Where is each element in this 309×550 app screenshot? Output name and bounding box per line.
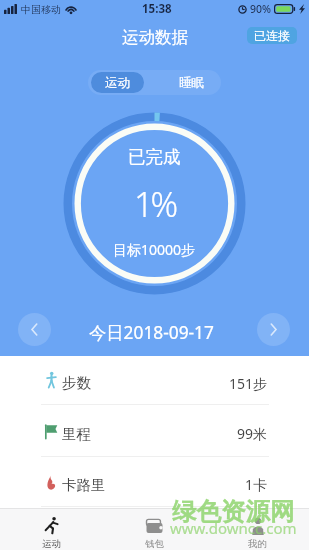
- button[interactable]: 钱包: [103, 509, 206, 550]
- staticText: 今日2018-09-17: [89, 321, 214, 345]
- button[interactable]: 里程: [0, 405, 309, 456]
- button[interactable]: 我的: [206, 509, 309, 550]
- staticText: 已连接: [254, 28, 290, 43]
- staticText: 99米: [237, 424, 268, 443]
- staticText: 目标10000步: [113, 240, 196, 259]
- button[interactable]: Previous day: [18, 313, 51, 346]
- staticText: 90%: [250, 2, 271, 16]
- button[interactable]: 运动: [0, 509, 103, 550]
- button[interactable]: 步数: [0, 356, 309, 404]
- staticText: 我的: [248, 538, 267, 550]
- staticText: 运动: [105, 75, 130, 91]
- staticText: 绿色资源网: [172, 496, 295, 527]
- staticText: 运动: [42, 538, 61, 550]
- staticText: 1卡: [245, 475, 268, 494]
- staticText: 步数: [62, 374, 91, 392]
- staticText: 运动数据: [122, 27, 188, 48]
- button[interactable]: Next day: [257, 313, 290, 346]
- staticText: 睡眠: [179, 75, 204, 91]
- button[interactable]: 卡路里: [0, 457, 309, 506]
- staticText: 钱包: [145, 538, 164, 550]
- staticText: www.downcc.com: [170, 518, 297, 538]
- staticText: 15:38: [142, 1, 172, 17]
- button[interactable]: 运动: [91, 72, 144, 93]
- staticText: 1%: [134, 181, 176, 227]
- button[interactable]: 已连接: [247, 27, 297, 44]
- staticText: 里程: [62, 425, 91, 443]
- staticText: 已完成: [128, 146, 181, 168]
- staticText: 中国移动: [21, 3, 61, 16]
- staticText: 151步: [229, 374, 268, 393]
- staticText: 卡路里: [62, 476, 106, 494]
- button[interactable]: 睡眠: [165, 72, 218, 93]
